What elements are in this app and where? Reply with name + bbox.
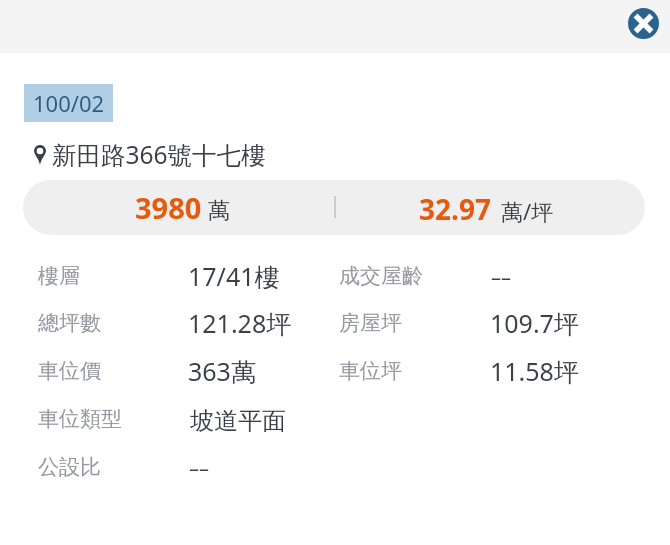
staticText: 坡道平面 <box>190 406 286 436</box>
staticText: 成交屋齡 <box>339 263 423 289</box>
staticText: 109.7坪 <box>490 306 579 340</box>
staticText: 車位類型 <box>38 406 122 432</box>
staticText: 樓層 <box>38 263 80 289</box>
staticText: 新田路366號十七樓 <box>52 138 266 171</box>
staticText: 32.97 <box>419 190 491 228</box>
staticText: 363萬 <box>188 354 256 388</box>
staticText: 萬 <box>208 197 230 225</box>
staticText: 3980 <box>135 188 202 227</box>
staticText: 100/02 <box>33 88 105 118</box>
staticText: 17/41樓 <box>188 259 280 293</box>
staticText: –– <box>189 455 209 482</box>
staticText: –– <box>491 264 511 291</box>
staticText: 公設比 <box>38 454 101 480</box>
staticText: 車位價 <box>38 358 101 384</box>
staticText: 房屋坪 <box>339 310 402 336</box>
staticText: 車位坪 <box>339 358 402 384</box>
staticText: 121.28坪 <box>188 306 292 340</box>
button[interactable]: Close <box>628 8 659 39</box>
staticText: 萬/坪 <box>501 196 554 226</box>
staticText: 總坪數 <box>38 310 101 336</box>
staticText: 11.58坪 <box>490 354 579 388</box>
